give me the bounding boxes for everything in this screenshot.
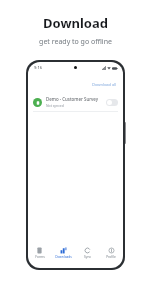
staticText: Forms	[35, 255, 45, 259]
button[interactable]: Forms	[28, 245, 51, 261]
staticText: Sync	[84, 255, 91, 259]
staticText: Profile	[106, 255, 116, 259]
button[interactable]: Download toggle	[106, 99, 118, 106]
button[interactable]: Download all	[91, 81, 118, 88]
button[interactable]: Downloads	[51, 245, 75, 261]
button[interactable]: Sync	[75, 245, 99, 261]
button[interactable]: Demo - Customer Survey	[28, 93, 123, 111]
staticText: 9:16	[34, 65, 42, 70]
staticText: get ready to go offline	[39, 37, 112, 47]
staticText: Demo - Customer Survey	[46, 96, 99, 102]
staticText: Download	[43, 14, 108, 32]
staticText: Downloads	[55, 255, 72, 259]
staticText: Download all	[92, 82, 117, 87]
button[interactable]: Profile	[99, 245, 123, 261]
staticText: Not synced	[46, 103, 64, 108]
